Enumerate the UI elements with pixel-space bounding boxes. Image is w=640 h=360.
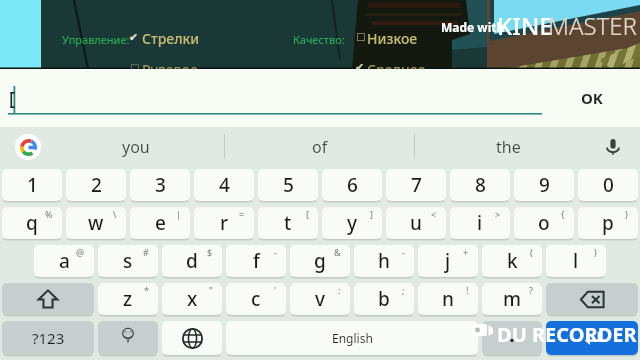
staticText: DU RECORDER xyxy=(497,321,637,348)
staticText: l xyxy=(573,248,579,274)
button[interactable]: 2 xyxy=(66,169,126,201)
staticText: $ xyxy=(207,246,213,258)
button[interactable]: Google xyxy=(15,134,41,160)
staticText: [ xyxy=(306,208,309,220)
staticText: a xyxy=(59,248,70,274)
staticText: ; xyxy=(402,284,405,296)
button[interactable]: g xyxy=(290,245,350,277)
staticText: Качество: xyxy=(293,32,345,47)
button[interactable]: p xyxy=(578,207,638,239)
button[interactable]: English xyxy=(226,321,478,355)
staticText: * xyxy=(144,284,149,296)
button[interactable]: v xyxy=(290,283,350,315)
button[interactable]: z xyxy=(98,283,158,315)
staticText: { xyxy=(561,208,565,220)
button[interactable]: Period xyxy=(482,321,542,355)
other: Emoji xyxy=(113,323,143,353)
staticText: = xyxy=(239,208,245,220)
button[interactable]: you xyxy=(48,127,224,166)
button[interactable]: Shift xyxy=(2,283,94,315)
other: Change language xyxy=(182,328,203,349)
staticText: # xyxy=(143,246,149,258)
staticText: q xyxy=(26,210,38,236)
button[interactable]: 6 xyxy=(322,169,382,201)
button[interactable]: e xyxy=(130,207,190,239)
button[interactable]: b xyxy=(354,283,414,315)
staticText: o xyxy=(538,210,550,236)
staticText: - xyxy=(402,246,405,258)
staticText: ] xyxy=(370,208,373,220)
staticText: ( xyxy=(530,246,533,258)
staticText: ?123 xyxy=(32,328,65,348)
staticText: Стрелки xyxy=(142,29,200,48)
button[interactable]: 8 xyxy=(450,169,510,201)
button[interactable]: 7 xyxy=(386,169,446,201)
button[interactable]: a xyxy=(34,245,94,277)
staticText: r xyxy=(220,210,229,236)
button[interactable]: s xyxy=(98,245,158,277)
button[interactable]: d xyxy=(162,245,222,277)
staticText: u xyxy=(410,210,422,236)
staticText: @ xyxy=(76,246,85,258)
staticText: n xyxy=(442,286,454,312)
button[interactable]: Voice input xyxy=(586,127,640,166)
button[interactable]: n xyxy=(418,283,478,315)
staticText: v xyxy=(315,286,326,312)
staticText: Рулевое xyxy=(142,60,198,79)
button[interactable]: 9 xyxy=(514,169,574,201)
staticText: Made with xyxy=(441,19,505,35)
button[interactable]: 5 xyxy=(258,169,318,201)
button[interactable]: 4 xyxy=(194,169,254,201)
button[interactable]: h xyxy=(354,245,414,277)
button[interactable]: k xyxy=(482,245,542,277)
staticText: of xyxy=(312,136,328,158)
staticText: i xyxy=(477,210,483,236)
button[interactable]: of xyxy=(225,127,414,166)
other: Backspace xyxy=(579,286,606,313)
button[interactable]: Enter xyxy=(546,321,638,355)
button[interactable]: x xyxy=(162,283,222,315)
staticText: f xyxy=(253,248,260,274)
staticText: 7 xyxy=(411,172,422,198)
staticText: ? xyxy=(529,284,533,296)
button[interactable]: 3 xyxy=(130,169,190,201)
button[interactable]: j xyxy=(418,245,478,277)
staticText: h xyxy=(378,248,390,274)
button[interactable]: f xyxy=(226,245,286,277)
staticText: g xyxy=(314,248,326,274)
staticText: x xyxy=(187,286,198,312)
staticText: Среднее xyxy=(367,60,426,79)
button[interactable]: the xyxy=(415,127,601,166)
button[interactable]: OK xyxy=(544,69,640,127)
staticText: " xyxy=(209,284,213,296)
staticText: Управление: xyxy=(62,32,130,47)
button[interactable]: Emoji xyxy=(98,321,158,355)
button[interactable]: Backspace xyxy=(546,283,638,315)
staticText: > xyxy=(495,208,501,220)
staticText: - xyxy=(274,246,277,258)
staticText: } xyxy=(625,208,629,220)
button[interactable]: 0 xyxy=(578,169,638,201)
staticText: p xyxy=(602,210,614,236)
staticText: ! xyxy=(466,284,469,296)
button[interactable]: y xyxy=(322,207,382,239)
button[interactable]: u xyxy=(386,207,446,239)
staticText: w xyxy=(88,210,104,236)
button[interactable]: c xyxy=(226,283,286,315)
button[interactable]: i xyxy=(450,207,510,239)
button[interactable]: l xyxy=(546,245,606,277)
button[interactable]: r xyxy=(194,207,254,239)
staticText: English xyxy=(332,330,373,346)
button[interactable]: ?123 xyxy=(2,321,94,355)
button[interactable]: Change language xyxy=(162,321,222,355)
button[interactable]: m xyxy=(482,283,542,315)
button[interactable]: w xyxy=(66,207,126,239)
button[interactable]: 1 xyxy=(2,169,62,201)
button[interactable]: q xyxy=(2,207,62,239)
staticText: □ xyxy=(130,62,140,74)
button[interactable]: o xyxy=(514,207,574,239)
staticText: b xyxy=(378,286,390,312)
staticText: ' xyxy=(274,284,277,296)
staticText: : xyxy=(338,284,341,296)
button[interactable]: t xyxy=(258,207,318,239)
